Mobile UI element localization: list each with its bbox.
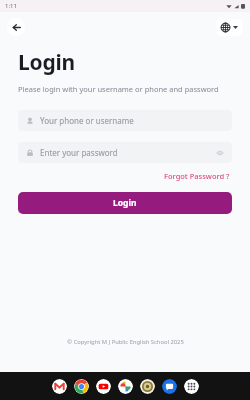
button[interactable]: YouTube [96, 379, 111, 394]
staticText: Login [113, 197, 137, 209]
button[interactable]: Back [7, 18, 25, 36]
button[interactable]: Your phone or username [18, 110, 232, 131]
staticText: Your phone or username [40, 115, 134, 126]
staticText: Forgot Password ? [164, 171, 230, 181]
staticText: Login [18, 48, 76, 77]
button[interactable]: Chrome [74, 379, 89, 394]
button[interactable]: Select language [216, 19, 243, 36]
button[interactable]: Show password [216, 149, 224, 157]
button[interactable]: Gmail [52, 379, 67, 394]
staticText: 1:11 [5, 2, 17, 10]
button[interactable]: Messages [162, 379, 177, 394]
button[interactable]: Photos [118, 379, 133, 394]
staticText: Enter your password [40, 147, 118, 158]
button[interactable]: All apps [184, 379, 199, 394]
button[interactable]: Enter your password [18, 142, 232, 163]
button[interactable]: Forgot Password ? [162, 170, 232, 182]
button[interactable]: Login [18, 192, 232, 214]
staticText: Please login with your username or phone… [18, 84, 219, 94]
staticText: © Copyright M J Public English School 20… [67, 338, 184, 346]
button[interactable]: Badge app [140, 379, 155, 394]
